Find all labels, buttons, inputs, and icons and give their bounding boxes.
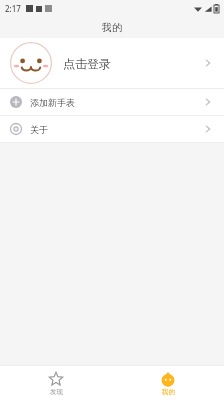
button[interactable]: 点击登录 (0, 38, 224, 88)
other: Open (202, 57, 214, 69)
staticText: 我的 (162, 388, 175, 396)
staticText: 添加新手表 (30, 97, 75, 108)
staticText: 关于 (30, 124, 48, 135)
button[interactable]: 我的 (112, 366, 224, 400)
button[interactable]: 添加新手表 (0, 89, 224, 115)
other: Open (202, 96, 214, 108)
staticText: 2:17 (5, 3, 21, 14)
other: Open (202, 123, 214, 135)
staticText: 点击登录 (63, 56, 111, 71)
button[interactable]: 关于 (0, 116, 224, 142)
staticText: 发现 (50, 388, 63, 396)
button[interactable]: 发现 (0, 366, 112, 400)
staticText: 我的 (102, 21, 122, 34)
